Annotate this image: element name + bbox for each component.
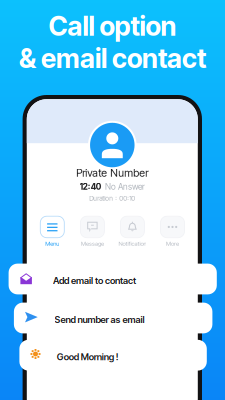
button[interactable]: Send number as email	[14, 303, 212, 333]
button[interactable]: Menu	[32, 216, 72, 247]
staticText: Call option	[48, 10, 176, 42]
staticText: Message	[81, 240, 104, 247]
staticText: Menu	[45, 240, 59, 247]
staticText: & email contact	[19, 42, 206, 75]
staticText: Good Morning !	[57, 351, 119, 362]
staticText: No Answer	[105, 182, 145, 192]
staticText: Private Number	[76, 166, 148, 179]
button[interactable]: Message	[72, 216, 112, 247]
staticText: Duration : 00:10	[89, 194, 135, 202]
staticText: Send number as email	[54, 314, 144, 325]
button[interactable]: Notification	[112, 216, 152, 247]
staticText: More	[166, 240, 179, 247]
button[interactable]: More	[152, 216, 192, 247]
button[interactable]: Add email to contact	[9, 264, 217, 294]
staticText: Add email to contact	[53, 275, 136, 286]
staticText: 12:40	[80, 182, 102, 192]
button[interactable]: Good Morning !	[19, 340, 207, 371]
staticText: Notification	[118, 240, 146, 247]
